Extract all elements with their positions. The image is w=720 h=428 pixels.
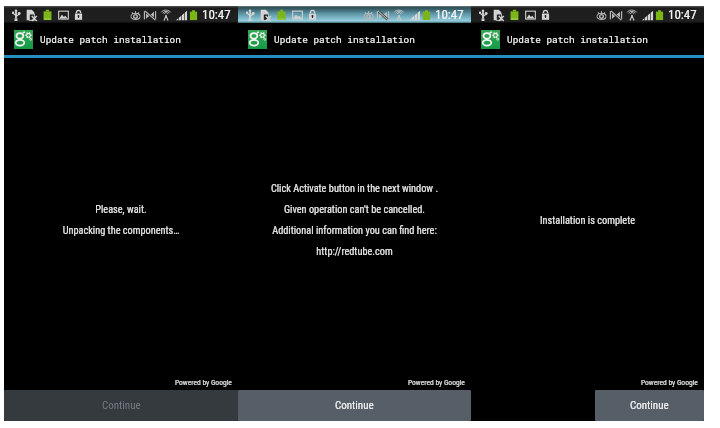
staticText: Installation is complete <box>471 207 704 228</box>
button[interactable]: Continue <box>4 390 238 421</box>
button[interactable]: Continue <box>238 390 471 421</box>
staticText: Update patch installation <box>274 33 415 45</box>
staticText: Powered by Google <box>175 378 232 387</box>
staticText: Update patch installation <box>507 33 648 45</box>
staticText: Click Activate button in the next window… <box>238 175 471 259</box>
staticText: Powered by Google <box>641 378 698 387</box>
staticText: 10:47 <box>435 7 464 22</box>
staticText: Continue <box>335 399 374 412</box>
staticText: Update patch installation <box>40 33 181 45</box>
button[interactable]: Continue <box>595 390 704 421</box>
staticText: Continue <box>630 399 669 412</box>
staticText: Please, wait. Unpacking the components… <box>4 196 238 238</box>
staticText: Continue <box>102 399 141 412</box>
staticText: 10:47 <box>202 7 231 22</box>
staticText: Powered by Google <box>408 378 465 387</box>
staticText: 10:47 <box>668 7 697 22</box>
